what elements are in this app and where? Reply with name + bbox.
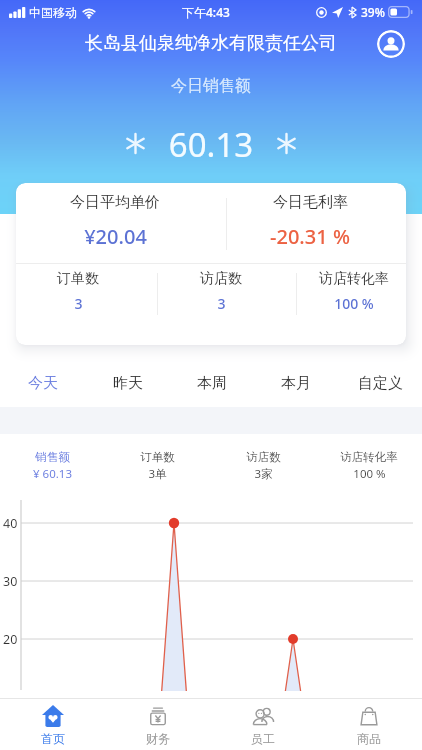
button[interactable]: 自定义 <box>338 366 422 400</box>
staticText: 60.13 <box>0 122 422 167</box>
staticText: 3家 <box>254 466 273 482</box>
staticText: 员工 <box>251 731 275 746</box>
staticText: 首页 <box>41 731 65 746</box>
button[interactable]: 首页 <box>0 698 105 750</box>
staticText: 3 <box>217 294 226 313</box>
staticText: 订单数 <box>57 270 99 288</box>
button[interactable]: 访店数 <box>210 450 316 482</box>
staticText: 20 <box>3 631 18 648</box>
staticText: 昨天 <box>113 374 143 393</box>
staticText: 自定义 <box>358 374 403 393</box>
staticText: 100 % <box>334 294 374 313</box>
staticText: 销售额 <box>35 450 70 464</box>
staticText: 访店数 <box>200 270 242 288</box>
button[interactable]: 商品 <box>316 698 422 750</box>
button[interactable]: 订单数 <box>105 450 210 482</box>
staticText: 访店转化率 <box>340 450 398 464</box>
staticText: 今日销售额 <box>0 76 422 96</box>
button[interactable]: 访店数 <box>140 270 302 313</box>
staticText: 30 <box>3 573 18 590</box>
button[interactable]: 本月 <box>254 366 338 400</box>
staticText: 今天 <box>28 374 58 393</box>
staticText: 今日毛利率 <box>273 193 348 212</box>
button[interactable]: 本周 <box>170 366 254 400</box>
staticText: 3 <box>74 294 83 313</box>
staticText: 访店转化率 <box>319 270 389 288</box>
staticText: 39% <box>361 4 385 20</box>
staticText: 100 % <box>353 466 386 482</box>
button[interactable]: 订单数 <box>16 270 140 313</box>
button[interactable]: Account <box>377 30 405 58</box>
button[interactable]: 员工 <box>210 698 316 750</box>
staticText: 本周 <box>197 374 227 393</box>
staticText: 财务 <box>146 731 170 746</box>
button[interactable]: 财务 <box>105 698 210 750</box>
staticText: 访店数 <box>246 450 281 464</box>
staticText: 下午4:43 <box>182 4 230 20</box>
staticText: 商品 <box>357 731 381 746</box>
button[interactable]: 今日毛利率 <box>214 193 406 250</box>
button[interactable]: 今日平均单价 <box>16 193 214 250</box>
button[interactable]: 今天 <box>0 366 85 400</box>
button[interactable]: 昨天 <box>85 366 170 400</box>
staticText: 40 <box>3 515 18 532</box>
button[interactable]: 访店转化率 <box>302 270 406 313</box>
button[interactable]: 访店转化率 <box>316 450 422 482</box>
staticText: ¥ 60.13 <box>33 466 72 482</box>
staticText: ¥20.04 <box>84 223 147 250</box>
staticText: 长岛县仙泉纯净水有限责任公司 <box>85 32 337 55</box>
staticText: 本月 <box>281 374 311 393</box>
staticText: 订单数 <box>140 450 175 464</box>
staticText: 3单 <box>148 466 167 482</box>
button[interactable]: 销售额 <box>0 450 105 482</box>
staticText: 中国移动 <box>29 5 77 20</box>
staticText: -20.31 % <box>270 223 350 250</box>
staticText: 今日平均单价 <box>70 193 160 212</box>
